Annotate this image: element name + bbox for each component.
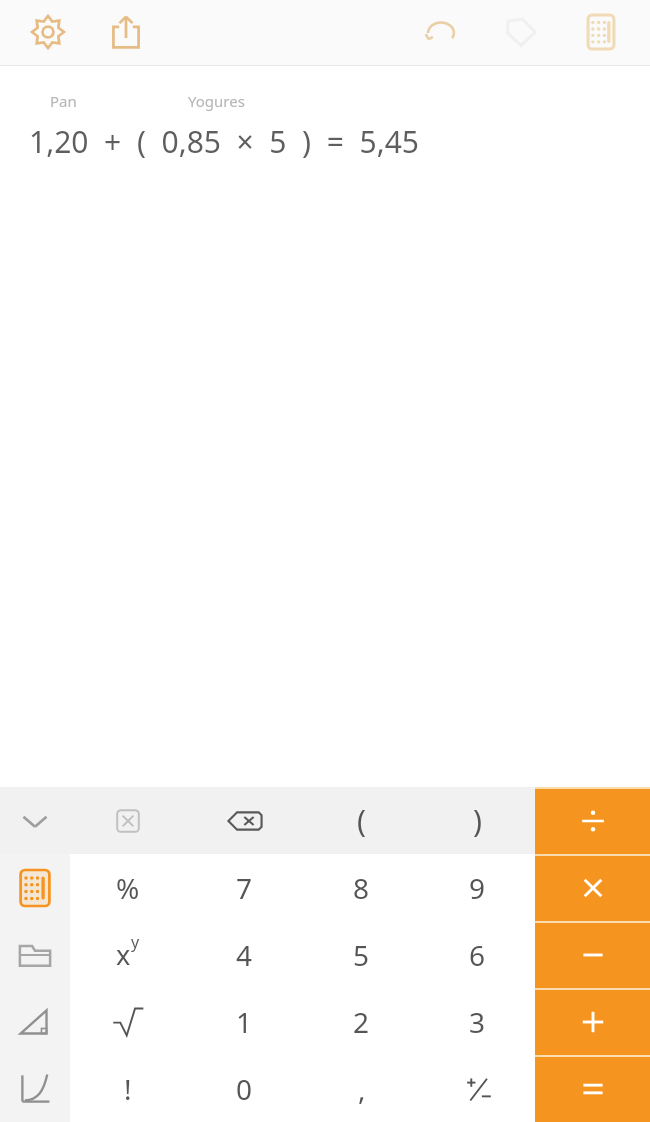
staticText: 0	[236, 1070, 253, 1108]
button[interactable]: (	[303, 787, 420, 854]
button[interactable]: !	[70, 1055, 186, 1122]
button[interactable]: Clear	[70, 787, 186, 854]
staticText: Pan	[50, 91, 77, 111]
button[interactable]: Geometry	[0, 988, 70, 1055]
button[interactable]: sub	[535, 921, 650, 988]
staticText: 7	[236, 869, 253, 907]
button[interactable]: 7	[186, 854, 303, 921]
staticText: %	[116, 869, 140, 907]
staticText: 3	[469, 1003, 486, 1041]
staticText: 2	[353, 1003, 370, 1041]
button[interactable]: ,	[303, 1055, 420, 1122]
button[interactable]: div	[535, 787, 650, 854]
button[interactable]: 2	[303, 988, 420, 1055]
button[interactable]: add	[535, 988, 650, 1055]
staticText: 1	[236, 1003, 253, 1041]
button[interactable]: %	[70, 854, 186, 921]
staticText: !	[124, 1070, 132, 1108]
button[interactable]: 3	[420, 988, 535, 1055]
button[interactable]: eq	[535, 1055, 650, 1122]
staticText: (	[357, 800, 366, 841]
button[interactable]: 8	[303, 854, 420, 921]
button[interactable]: Backspace	[186, 787, 303, 854]
button[interactable]: Undo	[415, 6, 467, 58]
staticText: 9	[469, 869, 486, 907]
staticText: 6	[469, 936, 486, 974]
staticText: 8	[353, 869, 370, 907]
staticText: 1,20 + ( 0,85 × 5 ) = 5,45	[29, 121, 419, 162]
staticText: x	[116, 936, 131, 973]
button[interactable]: 5	[303, 921, 420, 988]
button[interactable]: )	[420, 787, 535, 854]
button[interactable]: Collapse	[0, 787, 70, 854]
button[interactable]: Folders	[0, 921, 70, 988]
staticText: Yogures	[188, 91, 245, 111]
button[interactable]: Keypad	[0, 854, 70, 921]
staticText: )	[473, 800, 482, 841]
button[interactable]: 9	[420, 854, 535, 921]
button[interactable]: Graph	[0, 1055, 70, 1122]
button[interactable]: 6	[420, 921, 535, 988]
staticText: ,	[358, 1070, 366, 1108]
button[interactable]: Keypad	[575, 6, 627, 58]
staticText: 5	[353, 936, 370, 974]
button[interactable]: 4	[186, 921, 303, 988]
button[interactable]: 1	[186, 988, 303, 1055]
button[interactable]	[70, 988, 186, 1055]
staticText: y	[131, 931, 140, 953]
button[interactable]	[420, 1055, 535, 1122]
staticText: 4	[236, 936, 253, 974]
button[interactable]: Share	[100, 6, 152, 58]
button[interactable]: 0	[186, 1055, 303, 1122]
button[interactable]: x	[70, 921, 186, 988]
button[interactable]: Settings	[22, 6, 74, 58]
button[interactable]: mul	[535, 854, 650, 921]
